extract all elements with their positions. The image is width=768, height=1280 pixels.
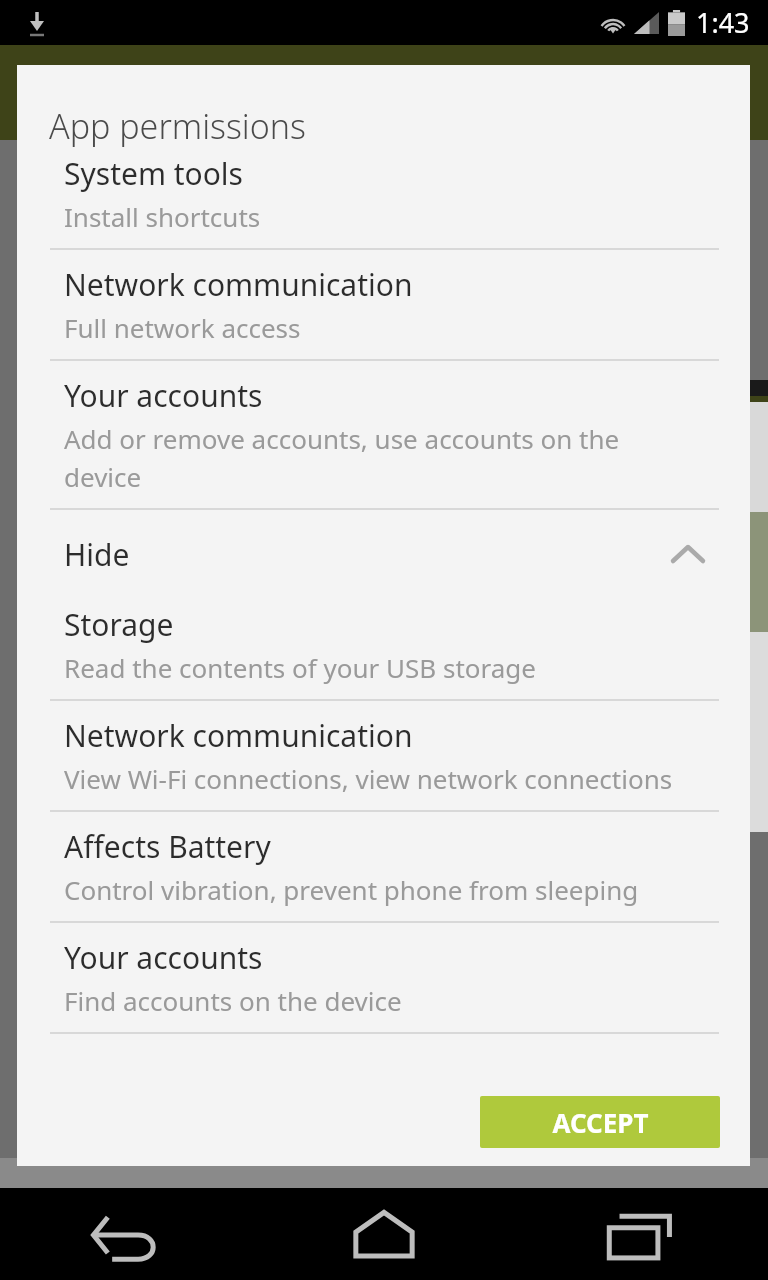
staticText: Network communication <box>64 264 413 305</box>
staticText: Find accounts on the device <box>64 983 402 1018</box>
button[interactable]: ACCEPT <box>480 1096 720 1148</box>
staticText: ACCEPT <box>552 1105 649 1140</box>
staticText: Affects Battery <box>64 826 271 867</box>
button[interactable]: Your accounts <box>17 923 750 1032</box>
staticText: Network communication <box>64 715 413 756</box>
staticText: Your accounts <box>64 375 263 416</box>
staticText: Full network access <box>64 310 301 345</box>
staticText: Add or remove accounts, use accounts on … <box>64 421 620 494</box>
staticText: System tools <box>64 153 243 194</box>
button[interactable]: System tools <box>17 153 750 248</box>
button[interactable]: Recents <box>512 1188 768 1280</box>
button[interactable]: Back <box>0 1188 256 1280</box>
button[interactable]: Network communication <box>17 250 750 359</box>
button[interactable]: Your accounts <box>17 361 750 508</box>
staticText: Your accounts <box>64 937 263 978</box>
button[interactable]: Network communication <box>17 701 750 810</box>
staticText: App permissions <box>49 103 306 149</box>
button[interactable]: Affects Battery <box>17 812 750 921</box>
staticText: 1:43 <box>696 4 750 41</box>
staticText: Install shortcuts <box>64 199 261 234</box>
staticText: View Wi-Fi connections, view network con… <box>64 761 673 796</box>
staticText: Storage <box>64 604 174 645</box>
staticText: Control vibration, prevent phone from sl… <box>64 872 639 907</box>
button[interactable]: Storage <box>17 598 750 699</box>
button[interactable]: Home <box>256 1188 512 1280</box>
button[interactable]: Hide <box>17 510 750 598</box>
staticText: Read the contents of your USB storage <box>64 650 537 685</box>
other: Collapse <box>666 532 710 576</box>
staticText: Hide <box>64 534 130 575</box>
